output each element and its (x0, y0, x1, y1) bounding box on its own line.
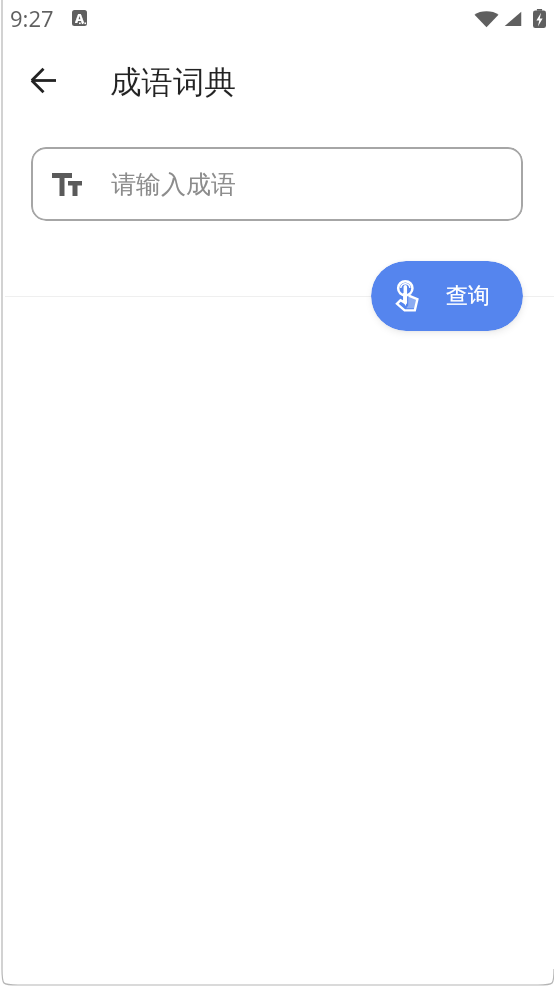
staticText: 请输入成语 (111, 169, 236, 200)
staticText: 9:27 (10, 3, 54, 33)
button[interactable]: 查询 (371, 261, 523, 331)
button[interactable]: Back (19, 56, 67, 104)
staticText: 成语词典 (110, 63, 236, 103)
button[interactable]: 请输入成语 (31, 147, 523, 221)
staticText: 查询 (446, 282, 490, 310)
staticText: A (75, 9, 84, 25)
